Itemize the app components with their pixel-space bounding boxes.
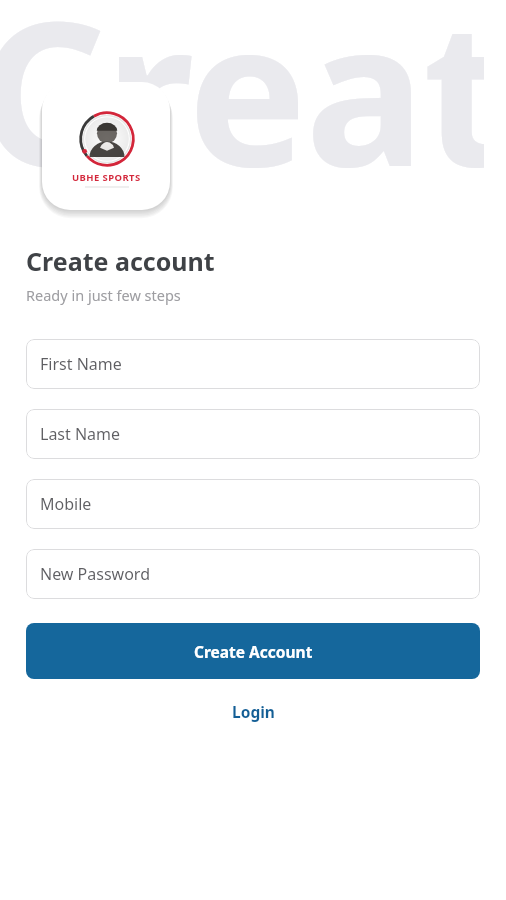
button[interactable]: Create Account	[26, 623, 480, 679]
button[interactable]: First Name	[26, 339, 480, 389]
other: UBHE Sports logo	[42, 82, 170, 210]
staticText: Mobile	[40, 493, 92, 515]
button[interactable]: Login	[218, 697, 289, 726]
staticText: Login	[232, 701, 275, 722]
staticText: UBHE SPORTS	[72, 171, 141, 184]
staticText: Create Account	[194, 641, 313, 662]
staticText: New Password	[40, 563, 150, 585]
staticText: First Name	[40, 353, 122, 375]
button[interactable]: Mobile	[26, 479, 480, 529]
button[interactable]: New Password	[26, 549, 480, 599]
staticText: Create account	[26, 244, 215, 278]
staticText: Last Name	[40, 423, 121, 445]
staticText: Ready in just few steps	[26, 285, 181, 305]
button[interactable]: Last Name	[26, 409, 480, 459]
staticText: Creat	[0, 0, 484, 224]
